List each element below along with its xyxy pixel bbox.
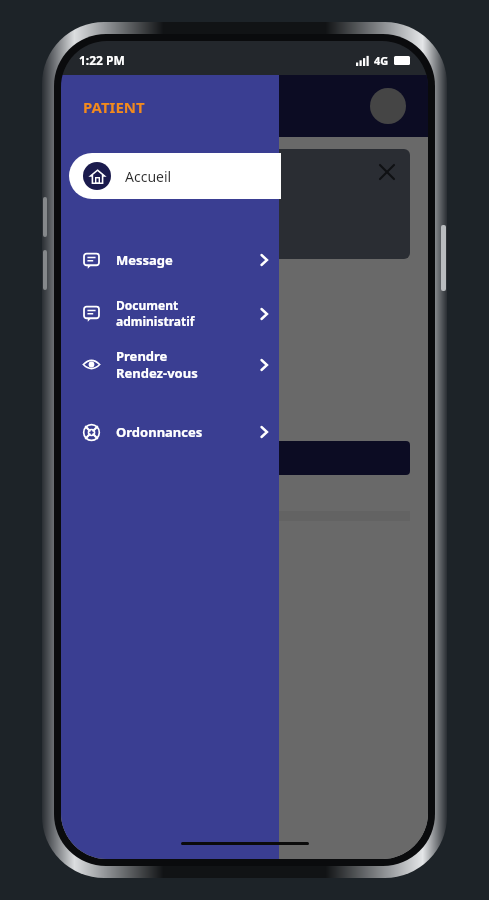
staticText: Ordonnances — [116, 423, 259, 441]
button[interactable]: Prendre Rendez-vous — [61, 341, 279, 387]
staticText: 4G — [374, 53, 389, 68]
button[interactable]: Close — [380, 165, 394, 179]
staticText: xyzjean123@gmail.com — [79, 409, 223, 427]
button[interactable]: Profile — [370, 88, 406, 124]
staticText: Accueil — [125, 167, 172, 186]
button[interactable]: Message — [61, 237, 279, 283]
button[interactable]: Document administratif — [61, 290, 279, 336]
staticText: Message — [116, 251, 259, 269]
button[interactable]: Accueil — [69, 153, 281, 199]
staticText: Prendre Rendez-vous — [116, 347, 259, 382]
staticText: Document administratif — [116, 297, 259, 330]
staticText: 1:22 PM — [79, 52, 125, 68]
staticText: PATIENT — [83, 97, 145, 117]
button[interactable]: Ordonnances — [61, 409, 279, 455]
button[interactable] — [79, 441, 410, 475]
